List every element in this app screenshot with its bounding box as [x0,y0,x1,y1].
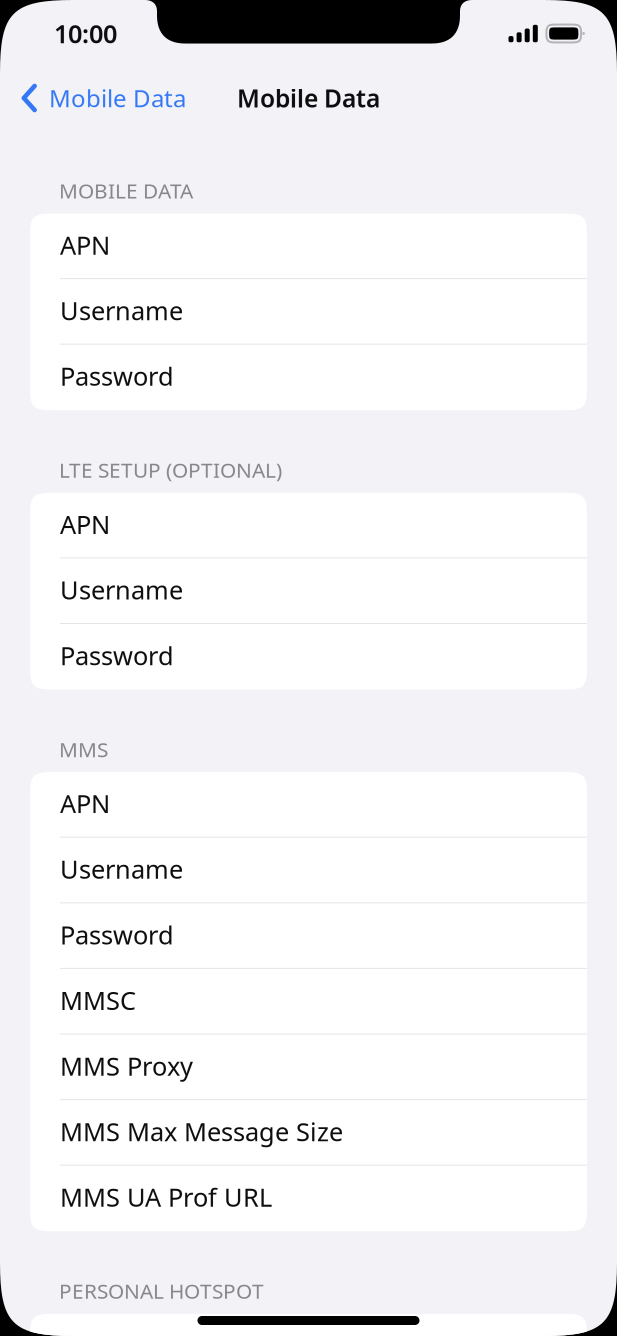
button[interactable]: Mobile Data [0,73,186,123]
button[interactable]: APN [30,1314,587,1336]
button[interactable]: APN [30,493,587,558]
staticText: MMSC [60,983,136,1017]
staticText: Password [60,638,174,672]
staticText: Mobile Data [237,81,380,115]
staticText: APN [60,507,110,541]
staticText: Password [60,917,174,952]
staticText: Mobile Data [49,82,186,114]
button[interactable]: MMSC [30,969,587,1034]
staticText: Password [60,359,174,393]
staticText: Username [60,852,183,886]
button[interactable]: APN [30,772,587,838]
staticText: Username [60,572,183,607]
button[interactable]: MMS Max Message Size [30,1100,587,1166]
staticText: APN [60,227,110,262]
staticText: 10:00 [54,17,117,50]
staticText: MMS Proxy [60,1048,193,1083]
button[interactable]: APN [30,213,587,279]
staticText: MOBILE DATA [59,176,193,205]
staticText: MMS UA Prof URL [60,1180,272,1214]
button[interactable]: Password [30,345,587,410]
button[interactable]: Password [30,903,587,969]
staticText: LTE SETUP (OPTIONAL) [59,456,282,484]
staticText: MMS [59,735,108,763]
staticText: Username [60,293,183,328]
staticText: MMS Max Message Size [60,1114,343,1149]
button[interactable]: Username [30,838,587,903]
staticText: PERSONAL HOTSPOT [59,1277,264,1305]
button[interactable]: MMS Proxy [30,1034,587,1100]
button[interactable]: Password [30,624,587,690]
button[interactable]: Username [30,279,587,345]
button[interactable]: Username [30,558,587,624]
staticText: APN [60,786,110,821]
button[interactable]: MMS UA Prof URL [30,1166,587,1231]
